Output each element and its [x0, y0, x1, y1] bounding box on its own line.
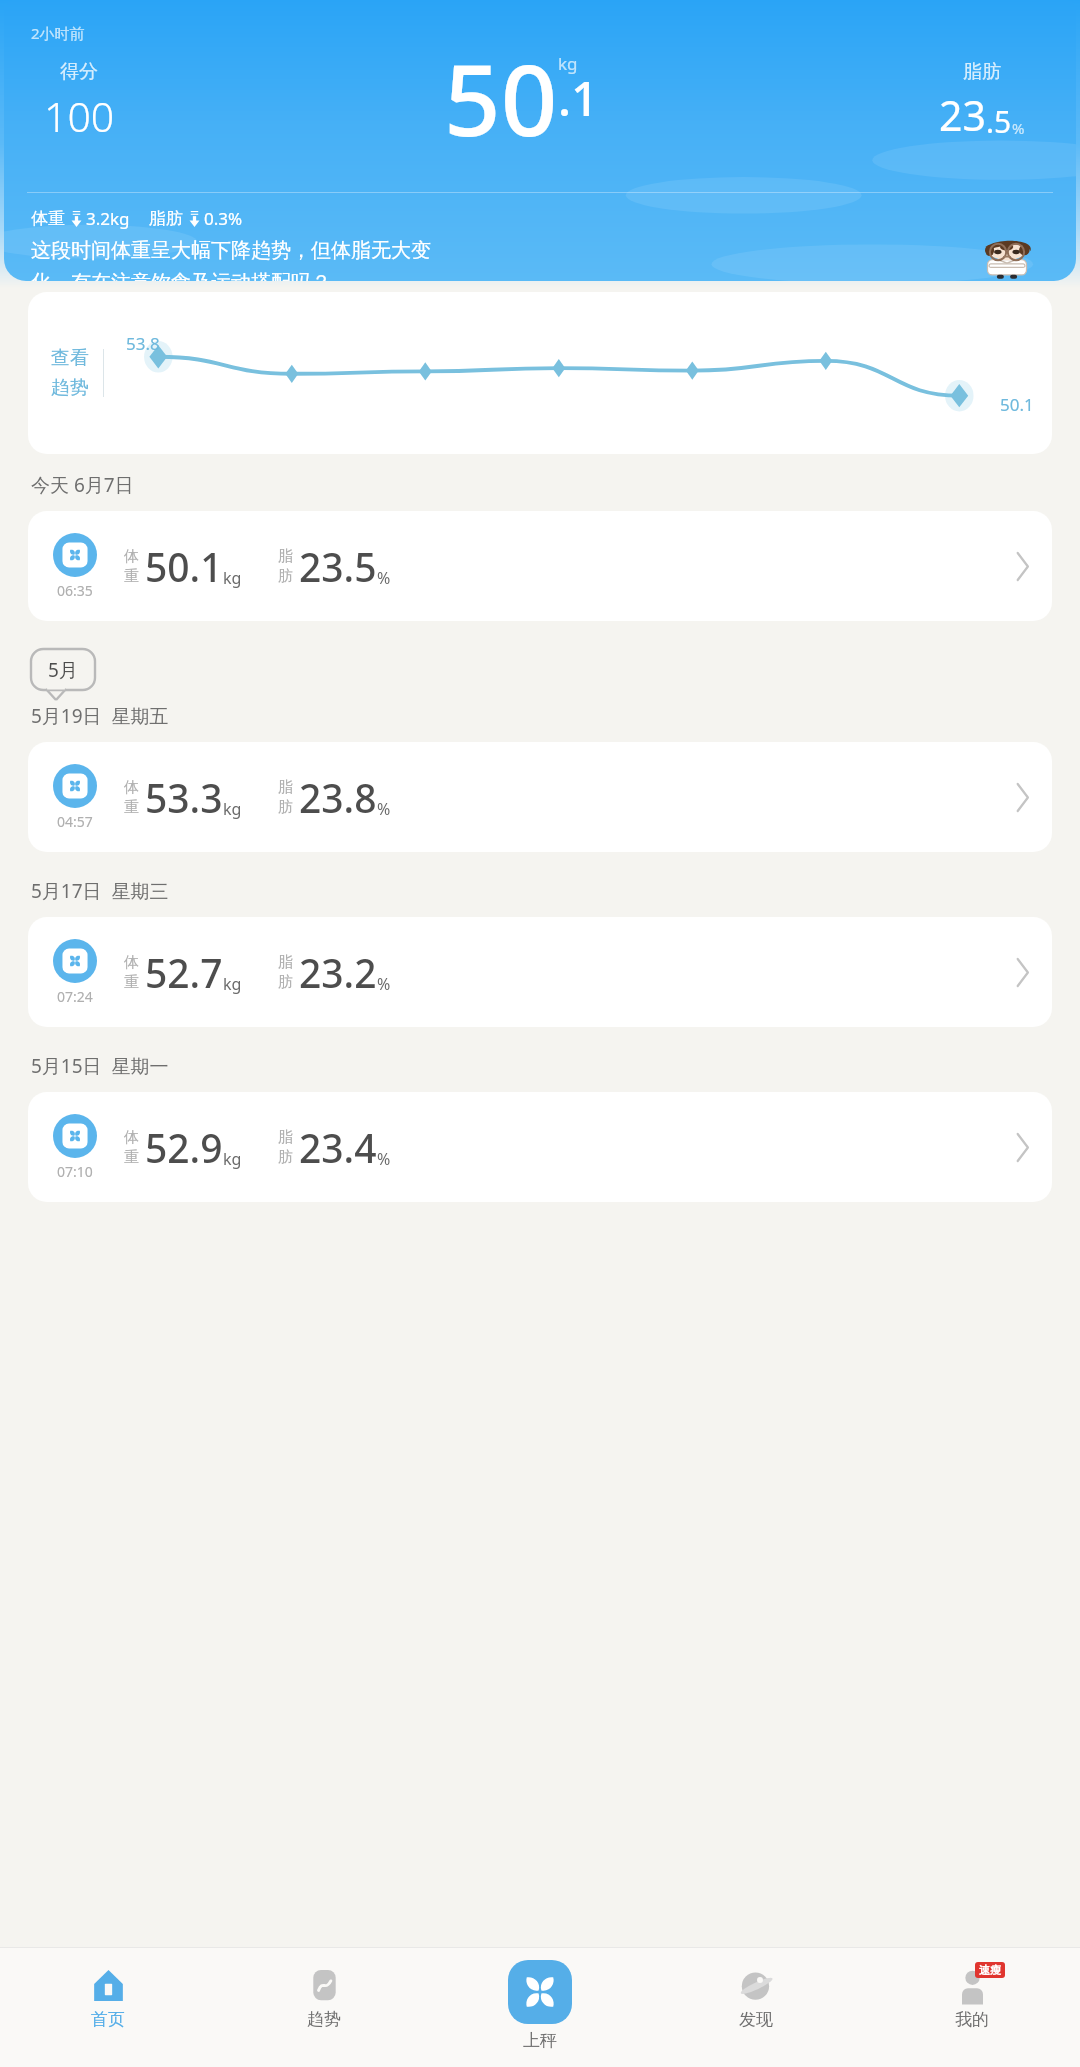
- staticText: 5月: [48, 657, 78, 683]
- staticText: kg: [223, 798, 242, 820]
- staticText: 100: [44, 88, 115, 144]
- staticText: 23.4: [299, 1121, 377, 1174]
- button[interactable]: 趋势: [216, 1947, 432, 2067]
- button[interactable]: 上秤: [508, 1960, 572, 2051]
- staticText: 趋势: [307, 2009, 341, 2030]
- staticText: 肪: [278, 973, 293, 992]
- staticText: 50.1: [1000, 393, 1034, 416]
- staticText: 23: [939, 87, 986, 143]
- staticText: 重: [124, 798, 139, 817]
- staticText: 重: [124, 973, 139, 992]
- staticText: %: [377, 1148, 391, 1170]
- staticText: 体: [124, 953, 139, 972]
- button[interactable]: 发现: [648, 1947, 864, 2067]
- staticText: 50.1: [145, 540, 223, 593]
- staticText: 23.8: [299, 771, 377, 824]
- staticText: kg: [223, 973, 242, 995]
- button[interactable]: 06:35: [28, 511, 1052, 621]
- staticText: kg: [223, 1148, 242, 1170]
- staticText: 体: [124, 1128, 139, 1147]
- staticText: 首页: [91, 2009, 125, 2030]
- staticText: kg: [558, 52, 578, 75]
- staticText: 脂: [278, 953, 293, 972]
- staticText: 我的: [955, 2009, 989, 2030]
- other: 详情: [1015, 959, 1030, 986]
- staticText: 今天 6月7日: [31, 472, 134, 498]
- staticText: 52.9: [145, 1121, 223, 1174]
- button[interactable]: 07:10: [28, 1092, 1052, 1202]
- staticText: 23.2: [299, 946, 377, 999]
- staticText: %: [1012, 118, 1025, 138]
- staticText: 肪: [278, 567, 293, 586]
- staticText: 脂: [278, 1128, 293, 1147]
- staticText: 重: [124, 567, 139, 586]
- staticText: %: [377, 798, 391, 820]
- other: 详情: [1015, 553, 1030, 580]
- staticText: 重: [124, 1148, 139, 1167]
- staticText: 体重: [31, 208, 65, 229]
- staticText: 肪: [278, 1148, 293, 1167]
- staticText: 这段时间体重呈大幅下降趋势，但体脂无大变 化，有在注意饮食及运动搭配吗？: [31, 238, 431, 281]
- staticText: 脂: [278, 778, 293, 797]
- staticText: %: [377, 973, 391, 995]
- staticText: 体: [124, 778, 139, 797]
- staticText: 53.3: [145, 771, 223, 824]
- staticText: 得分: [60, 60, 98, 84]
- staticText: kg: [223, 567, 242, 589]
- button[interactable]: 速瘦: [864, 1947, 1080, 2067]
- staticText: 5月19日 星期五: [31, 703, 169, 729]
- staticText: 07:24: [57, 987, 93, 1006]
- staticText: 脂肪: [149, 208, 183, 229]
- staticText: .5: [986, 101, 1012, 142]
- staticText: 07:10: [57, 1162, 93, 1181]
- staticText: 查看: [51, 346, 89, 370]
- staticText: %: [377, 567, 391, 589]
- button[interactable]: 04:57: [28, 742, 1052, 852]
- staticText: 3.2kg: [86, 207, 130, 230]
- staticText: 体: [124, 547, 139, 566]
- staticText: 06:35: [57, 581, 93, 600]
- staticText: 52.7: [145, 946, 223, 999]
- staticText: 上秤: [523, 2030, 557, 2051]
- button[interactable]: 首页: [0, 1947, 216, 2067]
- staticText: 脂: [278, 547, 293, 566]
- button[interactable]: 07:24: [28, 917, 1052, 1027]
- staticText: 04:57: [57, 812, 93, 831]
- staticText: 2小时前: [31, 23, 85, 43]
- staticText: 趋势: [51, 376, 89, 400]
- staticText: 速瘦: [979, 1963, 1001, 1977]
- staticText: .1: [558, 65, 599, 130]
- staticText: 23.5: [299, 540, 377, 593]
- staticText: 50: [444, 30, 558, 165]
- staticText: 肪: [278, 798, 293, 817]
- staticText: 5月15日 星期一: [31, 1053, 169, 1079]
- staticText: 脂肪: [963, 60, 1001, 84]
- staticText: 发现: [739, 2009, 773, 2030]
- staticText: 5月17日 星期三: [31, 878, 169, 904]
- staticText: 0.3%: [204, 207, 243, 230]
- button[interactable]: 查看: [28, 292, 1052, 454]
- other: 详情: [1015, 1134, 1030, 1161]
- staticText: 53.8: [126, 332, 160, 355]
- other: 详情: [1015, 784, 1030, 811]
